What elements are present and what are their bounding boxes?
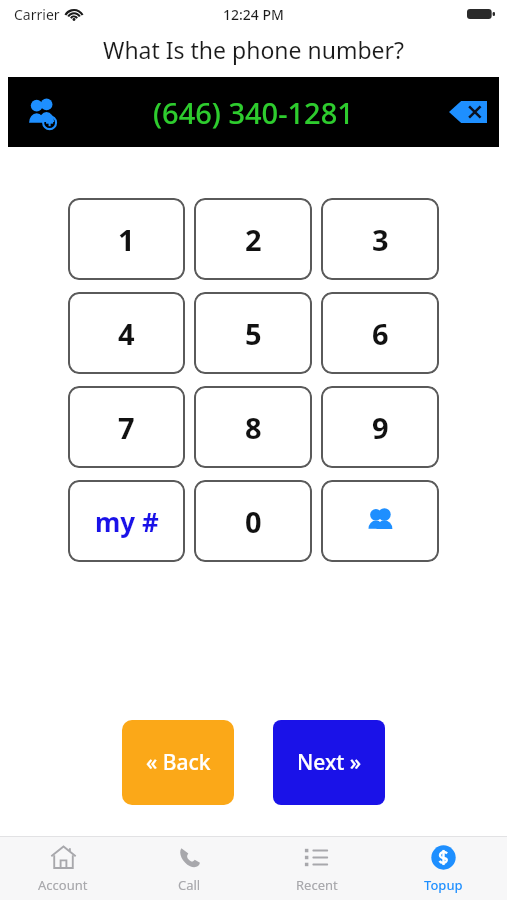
button[interactable]: Topup — [380, 837, 507, 900]
button[interactable]: 9 — [321, 386, 439, 468]
staticText: 1 — [118, 220, 135, 259]
button[interactable]: 7 — [68, 386, 185, 468]
button[interactable]: Account — [0, 837, 126, 900]
button[interactable]: Recent — [253, 837, 380, 900]
staticText: 4 — [118, 314, 135, 353]
staticText: 12:24 PM — [223, 5, 284, 24]
staticText: 6 — [372, 314, 389, 353]
staticText: 8 — [245, 408, 262, 447]
staticText: Recent — [296, 876, 338, 894]
staticText: What Is the phone number? — [0, 34, 507, 65]
staticText: Call — [178, 876, 201, 894]
staticText: 3 — [372, 220, 389, 259]
button[interactable]: 4 — [68, 292, 185, 374]
button[interactable]: 2 — [194, 198, 312, 280]
button[interactable]: 3 — [321, 198, 439, 280]
staticText: « Back — [146, 748, 211, 777]
staticText: Next » — [297, 748, 362, 777]
button[interactable]: « Back — [122, 720, 234, 805]
staticText: 0 — [245, 502, 262, 541]
button[interactable]: Backspace — [445, 92, 491, 132]
button[interactable]: Contacts — [321, 480, 439, 562]
button[interactable]: Next » — [273, 720, 385, 805]
staticText: my # — [95, 504, 159, 539]
button[interactable]: 8 — [194, 386, 312, 468]
staticText: 5 — [245, 314, 262, 353]
staticText: Topup — [424, 876, 463, 894]
staticText: 9 — [372, 408, 389, 447]
staticText: Account — [38, 876, 88, 894]
button[interactable]: Call — [126, 837, 253, 900]
staticText: 7 — [118, 408, 135, 447]
button[interactable]: Add contact — [18, 88, 66, 136]
button[interactable]: 1 — [68, 198, 185, 280]
staticText: (646) 340-1281 — [153, 93, 354, 132]
button[interactable]: 5 — [194, 292, 312, 374]
staticText: Carrier — [14, 5, 60, 24]
button[interactable]: 0 — [194, 480, 312, 562]
staticText: 2 — [245, 220, 262, 259]
button[interactable]: 6 — [321, 292, 439, 374]
button[interactable]: my # — [68, 480, 185, 562]
